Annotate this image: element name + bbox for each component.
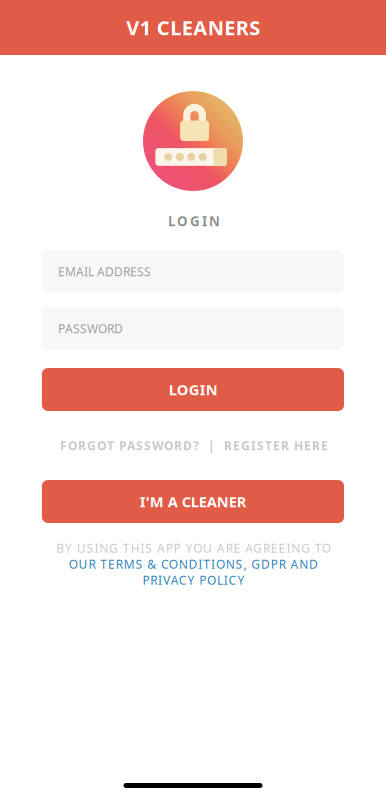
staticText: BY USING THIS APP YOU ARE AGREEING TO [56, 540, 330, 556]
button[interactable]: EMAIL ADDRESS [42, 250, 344, 293]
button[interactable]: LOGIN [42, 368, 344, 411]
staticText: FORGOT PASSWORD? | REGISTER HERE [59, 437, 327, 453]
staticText: V1 CLEANERS [126, 14, 260, 41]
button[interactable]: OUR TERMS & CONDITIONS, GDPR AND [42, 558, 344, 570]
staticText: PRIVACY POLICY [142, 572, 244, 588]
staticText: EMAIL ADDRESS [58, 263, 151, 279]
staticText: LOGIN [168, 380, 217, 399]
button[interactable]: PASSWORD [42, 307, 344, 350]
staticText: PASSWORD [58, 320, 123, 336]
staticText: LOGIN [167, 212, 219, 230]
button[interactable]: PRIVACY POLICY [42, 574, 344, 586]
staticText: OUR TERMS & CONDITIONS, GDPR AND [68, 556, 318, 572]
staticText: I'M A CLEANER [139, 492, 246, 511]
button[interactable]: I'M A CLEANER [42, 480, 344, 523]
button[interactable]: FORGOT PASSWORD? | REGISTER HERE [42, 411, 344, 480]
